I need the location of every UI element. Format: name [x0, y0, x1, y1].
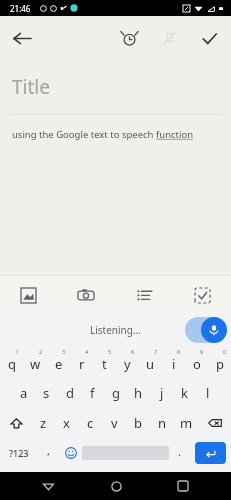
staticText: r	[79, 355, 85, 373]
button[interactable]: n	[150, 408, 174, 438]
button[interactable]: Shift	[0, 408, 32, 438]
button[interactable]: g	[104, 378, 127, 408]
button[interactable]: Reminder	[109, 18, 149, 58]
button[interactable]: Drawing	[173, 276, 231, 314]
staticText: m	[180, 414, 193, 432]
staticText: f	[90, 384, 95, 402]
staticText: c	[87, 414, 94, 432]
staticText: b	[134, 414, 142, 432]
button[interactable]: ,	[38, 438, 59, 468]
staticText: ,	[47, 443, 50, 458]
button[interactable]: h	[127, 378, 150, 408]
staticText: d	[66, 384, 74, 402]
button[interactable]: .	[169, 438, 190, 468]
button[interactable]: i	[162, 346, 185, 378]
button[interactable]: o	[185, 346, 208, 378]
staticText: ?123	[9, 447, 29, 459]
staticText: 8	[177, 348, 181, 355]
button[interactable]: Backspace	[198, 408, 231, 438]
button[interactable]: x	[55, 408, 78, 438]
button[interactable]: Home	[96, 472, 136, 500]
button[interactable]: r	[70, 346, 93, 378]
button[interactable]: k	[173, 378, 196, 408]
button[interactable]: f	[81, 378, 104, 408]
staticText: 6	[131, 348, 135, 355]
button[interactable]: w	[24, 346, 47, 378]
staticText: 9	[200, 348, 204, 355]
staticText: e	[55, 355, 63, 373]
staticText: 0	[223, 348, 227, 355]
staticText: u	[146, 355, 155, 373]
staticText: h	[134, 384, 143, 402]
button[interactable]: Back	[0, 16, 44, 60]
button[interactable]: Done	[189, 18, 229, 58]
staticText: a	[20, 384, 28, 402]
button[interactable]: d	[58, 378, 81, 408]
staticText: 4	[85, 348, 89, 355]
staticText: g	[112, 384, 120, 402]
staticText: l	[206, 384, 210, 402]
staticText: z	[40, 414, 47, 432]
staticText: p	[216, 355, 224, 373]
staticText: j	[160, 384, 164, 402]
staticText: x	[63, 414, 70, 432]
button[interactable]: Add image	[0, 276, 57, 314]
staticText: t	[102, 355, 107, 373]
staticText: 1	[16, 348, 20, 355]
button[interactable]: p	[208, 346, 231, 378]
staticText: q	[8, 355, 16, 373]
button[interactable]: j	[150, 378, 173, 408]
staticText: function	[156, 128, 194, 141]
button[interactable]: Enter	[195, 442, 226, 464]
staticText: 2	[39, 348, 43, 355]
staticText: Title	[12, 74, 50, 100]
button[interactable]: e	[47, 346, 70, 378]
staticText: w	[30, 355, 41, 373]
staticText: y	[124, 355, 131, 373]
button[interactable]: Emoji	[59, 438, 82, 468]
button[interactable]: c	[78, 408, 102, 438]
button[interactable]: Take photo	[57, 276, 115, 314]
button[interactable]: q	[0, 346, 24, 378]
button[interactable]: a	[12, 378, 35, 408]
button[interactable]: y	[116, 346, 139, 378]
staticText: n	[158, 414, 167, 432]
button[interactable]: s	[35, 378, 58, 408]
button[interactable]: Recents	[163, 472, 203, 500]
staticText: k	[181, 384, 188, 402]
staticText: i	[172, 355, 176, 373]
staticText: 3	[62, 348, 66, 355]
button[interactable]: b	[126, 408, 150, 438]
button[interactable]: ?123	[0, 438, 38, 468]
button[interactable]: Voice input	[201, 317, 227, 343]
staticText: 7	[154, 348, 158, 355]
button[interactable]: l	[196, 378, 219, 408]
staticText: v	[111, 414, 118, 432]
button[interactable]: z	[32, 408, 55, 438]
button[interactable]: Checklist	[115, 276, 173, 314]
staticText: 5	[108, 348, 112, 355]
button[interactable]: m	[174, 408, 198, 438]
button[interactable]: Back	[28, 472, 68, 500]
staticText: s	[43, 384, 50, 402]
button[interactable]: u	[139, 346, 162, 378]
staticText: using the Google text to speech	[12, 128, 156, 141]
staticText: Listening...	[90, 323, 141, 337]
button[interactable]: t	[93, 346, 116, 378]
staticText: .	[178, 444, 181, 459]
button[interactable]: v	[102, 408, 126, 438]
staticText: 21:46	[10, 3, 31, 14]
staticText: o	[193, 355, 201, 373]
